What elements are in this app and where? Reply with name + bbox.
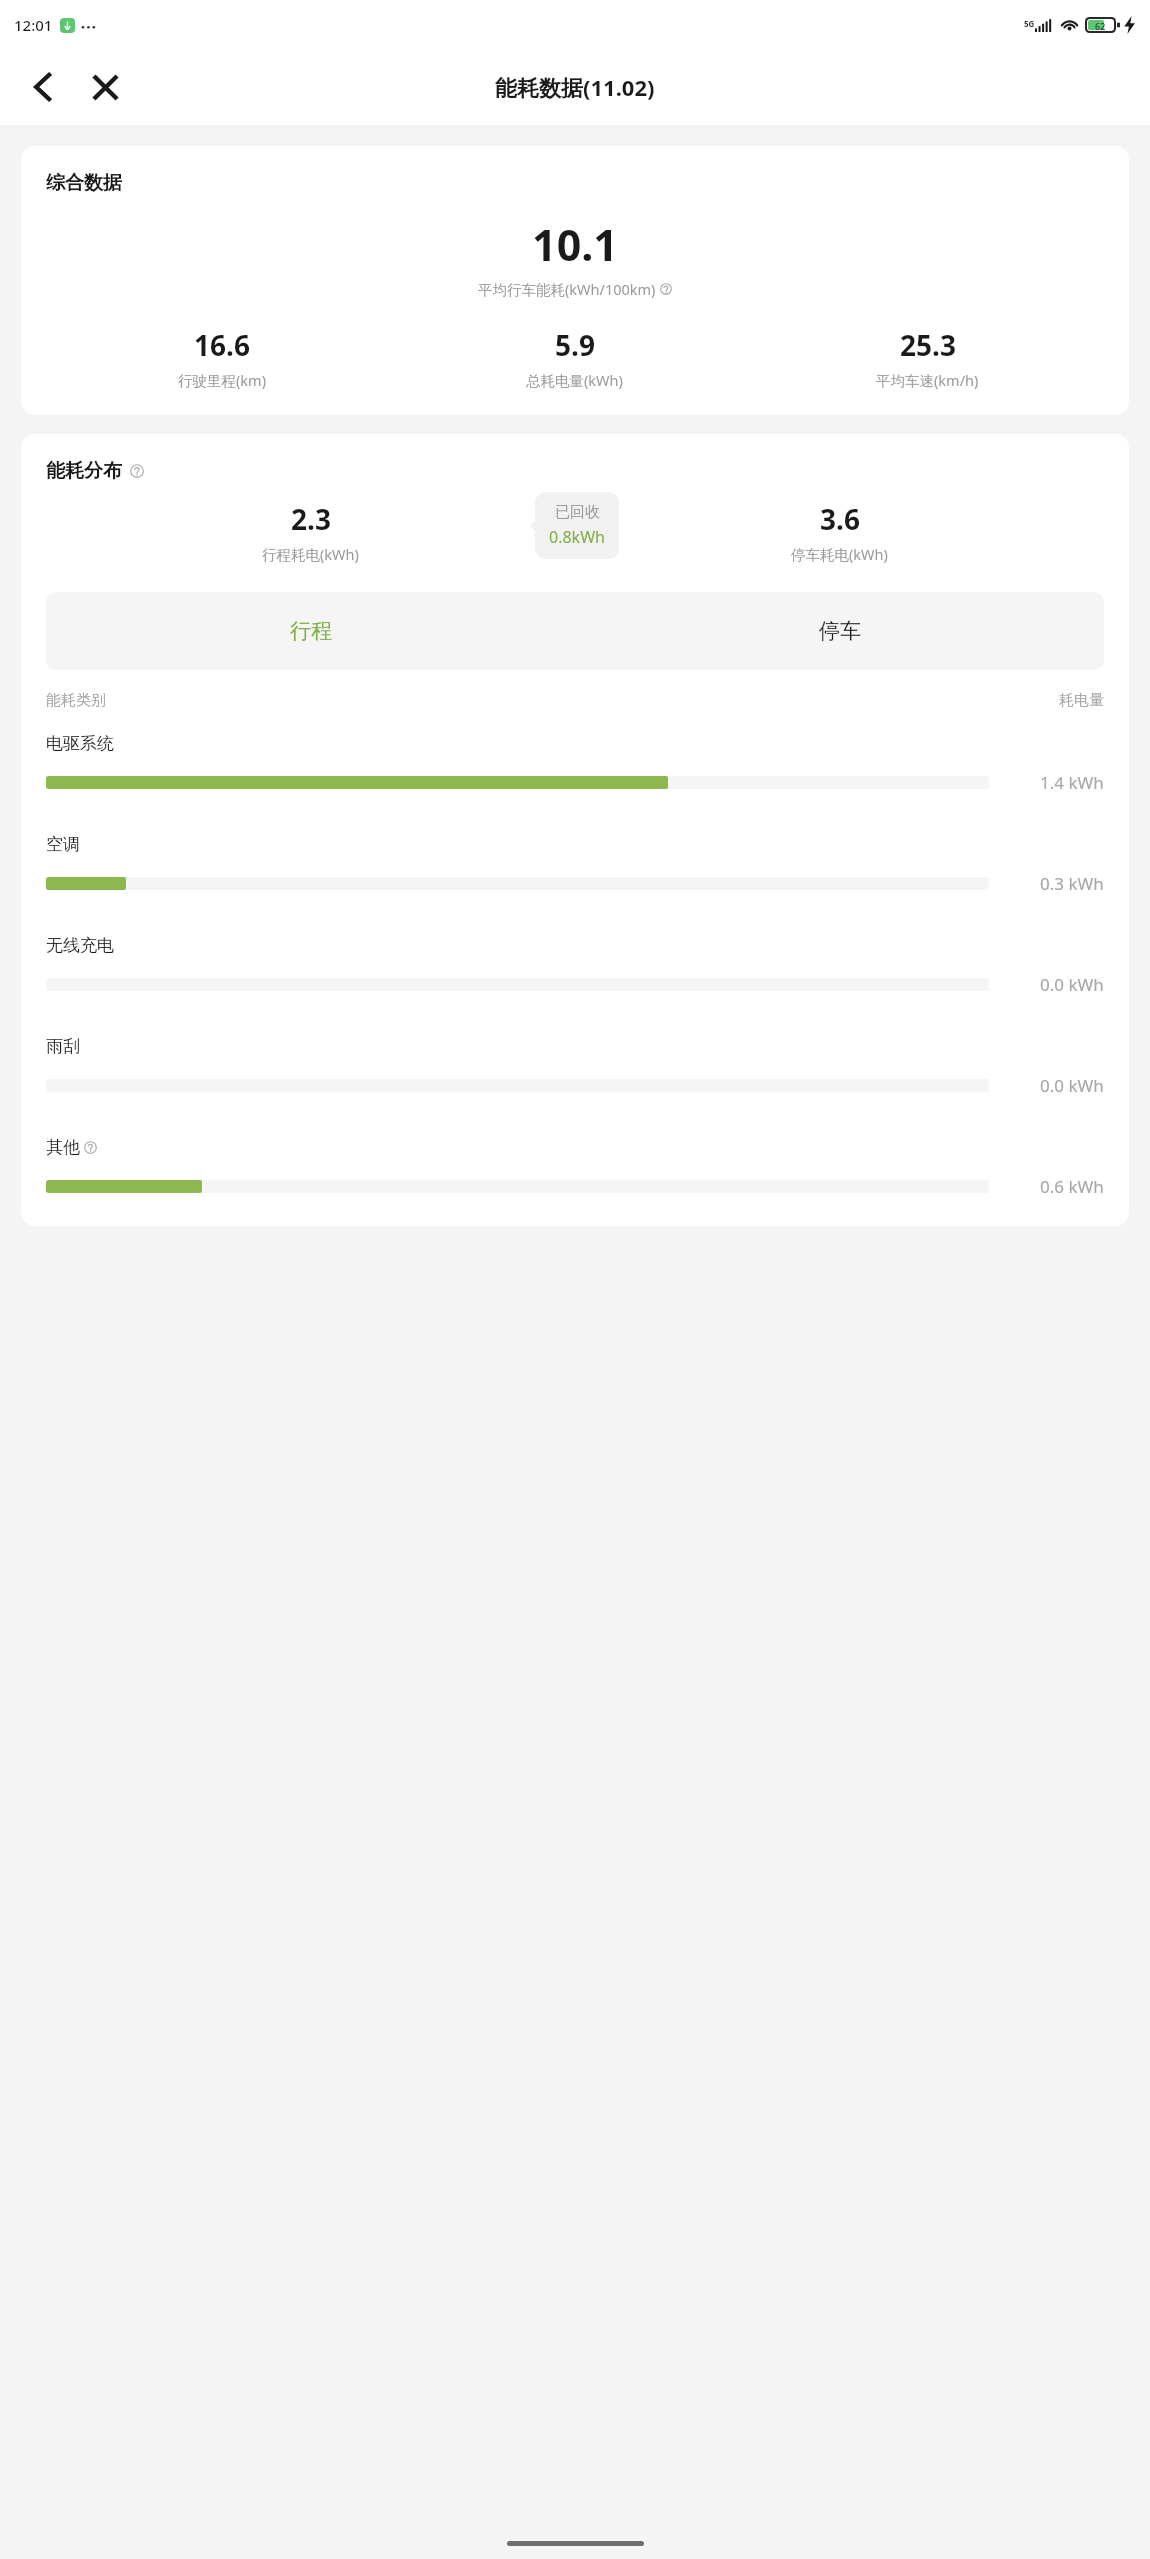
button[interactable]: 电驱系统	[46, 733, 1104, 834]
staticText: 行程	[290, 618, 332, 644]
staticText: 空调	[46, 834, 80, 855]
staticText: 平均行车能耗(kWh/100km)	[478, 279, 656, 299]
staticText: 能耗类别	[46, 691, 106, 710]
staticText: 综合数据	[46, 171, 122, 195]
staticText: 行程耗电(kWh)	[262, 544, 359, 564]
staticText: 10.1	[46, 215, 1104, 274]
staticText: 耗电量	[1059, 691, 1104, 710]
button[interactable]: Back	[17, 61, 69, 113]
staticText: 16.6	[194, 326, 250, 364]
staticText: 0.8kWh	[549, 526, 605, 548]
staticText: 总耗电量(kWh)	[526, 370, 623, 390]
button[interactable]: 行程	[46, 592, 575, 670]
staticText: 0.3 kWh	[1040, 872, 1104, 895]
staticText: 0.0 kWh	[1040, 973, 1104, 996]
staticText: 12:01	[14, 15, 53, 35]
button[interactable]: 空调	[46, 834, 1104, 935]
staticText: 62	[1095, 20, 1106, 30]
staticText: 平均车速(km/h)	[876, 370, 979, 390]
button[interactable]: 无线充电	[46, 935, 1104, 1036]
button[interactable]: 停车	[575, 592, 1104, 670]
staticText: 行驶里程(km)	[178, 370, 267, 390]
staticText: 无线充电	[46, 935, 114, 956]
staticText: 3.6	[820, 500, 860, 538]
button[interactable]: 其他	[46, 1137, 1104, 1226]
staticText: 0.6 kWh	[1040, 1175, 1104, 1198]
staticText: 能耗分布	[46, 459, 122, 483]
button[interactable]: 雨刮	[46, 1036, 1104, 1137]
staticText: 5.9	[555, 326, 595, 364]
staticText: 1.4 kWh	[1040, 771, 1104, 794]
staticText: 5G	[1024, 18, 1035, 29]
staticText: 2.3	[291, 500, 331, 538]
button[interactable]: Close	[79, 61, 131, 113]
staticText: 已回收	[555, 503, 600, 522]
button[interactable]: 综合数据	[21, 146, 1129, 415]
staticText: 停车耗电(kWh)	[791, 544, 888, 564]
staticText: 0.0 kWh	[1040, 1074, 1104, 1097]
staticText: 25.3	[900, 326, 956, 364]
staticText: 电驱系统	[46, 733, 114, 754]
staticText: 雨刮	[46, 1036, 80, 1057]
staticText: 能耗数据(11.02)	[495, 72, 655, 102]
staticText: 其他	[46, 1137, 80, 1158]
staticText: 停车	[819, 618, 861, 644]
